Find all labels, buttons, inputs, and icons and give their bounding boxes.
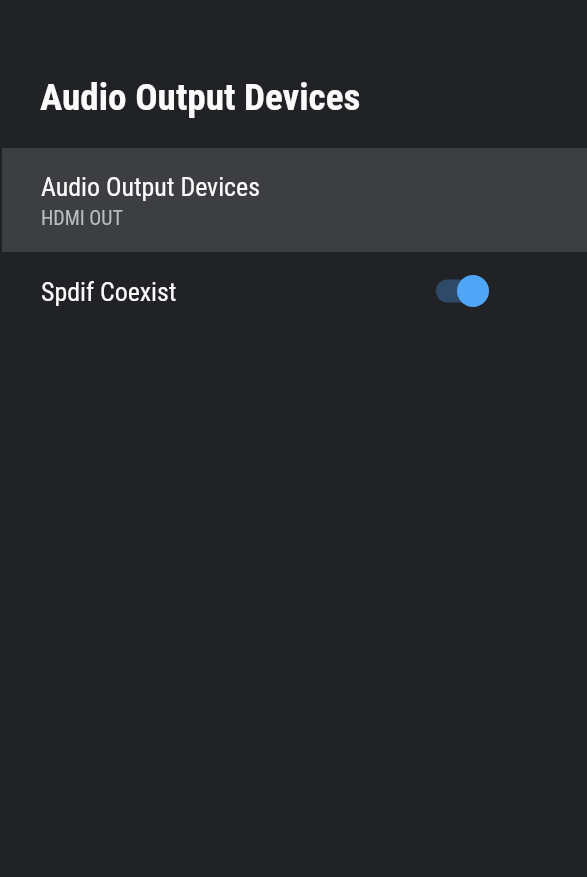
staticText: Audio Output Devices	[40, 75, 361, 119]
button[interactable]: Spdif Coexist, on	[436, 271, 489, 311]
staticText: HDMI OUT	[41, 206, 123, 229]
staticText: Audio Output Devices	[41, 172, 260, 202]
button[interactable]: Spdif Coexist	[0, 252, 587, 330]
button[interactable]: Audio Output Devices	[2, 148, 587, 252]
staticText: Spdif Coexist	[41, 277, 177, 307]
